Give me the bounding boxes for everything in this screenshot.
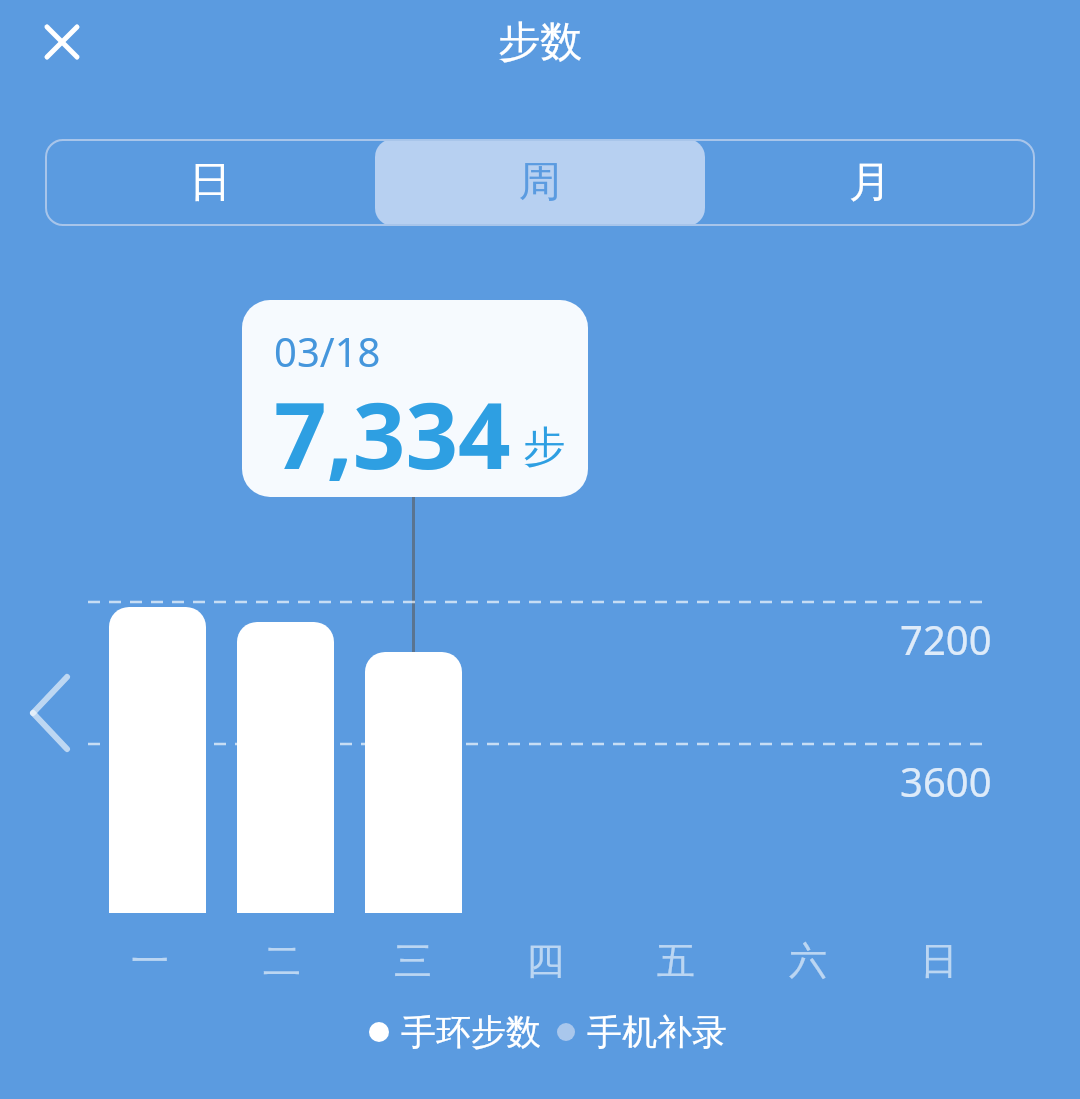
button[interactable] bbox=[20, 665, 80, 760]
staticText: 三 bbox=[394, 937, 432, 985]
staticText: 月 bbox=[849, 156, 891, 209]
staticText: 03/18 bbox=[274, 324, 381, 378]
staticText: 一 bbox=[131, 937, 169, 985]
staticText: 四 bbox=[526, 937, 564, 985]
button[interactable]: 周 bbox=[375, 139, 705, 226]
staticText: 手机补录 bbox=[587, 1010, 727, 1054]
staticText: 周 bbox=[519, 156, 561, 209]
staticText: 7,334 bbox=[274, 371, 511, 490]
staticText: 五 bbox=[657, 937, 695, 985]
button[interactable]: 月 bbox=[705, 139, 1035, 226]
staticText: 日 bbox=[189, 156, 231, 209]
staticText: 日 bbox=[920, 937, 958, 985]
button[interactable]: 日 bbox=[45, 139, 375, 226]
staticText: 3600 bbox=[900, 754, 992, 808]
staticText: 手环步数 bbox=[401, 1010, 541, 1054]
staticText: 步 bbox=[523, 421, 565, 474]
staticText: 二 bbox=[263, 937, 301, 985]
staticText: 7200 bbox=[900, 612, 992, 666]
staticText: 步数 bbox=[498, 16, 582, 69]
button[interactable] bbox=[32, 12, 92, 72]
staticText: 六 bbox=[789, 937, 827, 985]
